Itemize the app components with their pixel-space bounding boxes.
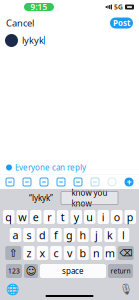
staticText: 123 — [8, 267, 20, 275]
staticText: r — [47, 210, 51, 224]
button[interactable]: n — [91, 246, 102, 260]
staticText: z — [26, 246, 31, 260]
button[interactable]: b — [77, 246, 89, 260]
staticText: x — [39, 246, 45, 260]
button[interactable]: Switch keyboard — [4, 281, 22, 297]
staticText: know you know — [71, 187, 107, 209]
staticText: t — [61, 210, 65, 224]
button[interactable]: know you know — [61, 191, 118, 204]
staticText: c — [53, 246, 58, 260]
staticText: a — [12, 228, 18, 242]
button[interactable]: u — [84, 210, 95, 224]
staticText: 🎙 — [119, 283, 133, 295]
button[interactable]: Character count — [103, 175, 120, 189]
staticText: ☺ — [25, 265, 36, 277]
staticText: g — [66, 228, 73, 242]
button[interactable]: “lykyk” — [21, 192, 61, 204]
staticText: ⇧ — [9, 247, 18, 259]
button[interactable]: q — [3, 210, 14, 224]
staticText: b — [79, 246, 86, 260]
button[interactable]: GIF — [18, 175, 35, 189]
staticText: k — [107, 228, 113, 242]
button[interactable]: Emoji — [24, 264, 38, 278]
staticText: 🌐 — [6, 283, 19, 295]
button[interactable]: Location — [86, 175, 103, 189]
button[interactable]: l — [118, 228, 129, 242]
button[interactable]: s — [23, 228, 35, 242]
button[interactable]: o — [111, 210, 122, 224]
button[interactable]: i — [97, 210, 109, 224]
staticText: q — [5, 210, 12, 224]
button[interactable]: c — [50, 246, 62, 260]
button[interactable]: h — [77, 228, 89, 242]
button[interactable]: 123 — [6, 264, 22, 278]
staticText: v — [67, 246, 72, 260]
button[interactable]: Dictation — [117, 281, 135, 297]
staticText: e — [33, 210, 39, 224]
button[interactable]: Cancel — [0, 13, 40, 33]
button[interactable]: p — [124, 210, 136, 224]
button[interactable]: Poll — [35, 175, 52, 189]
staticText: n — [93, 246, 100, 260]
staticText: space — [62, 266, 84, 276]
button[interactable]: f — [50, 228, 62, 242]
button[interactable]: Shift — [5, 246, 21, 260]
button[interactable]: v — [64, 246, 75, 260]
staticText: ⌫ — [119, 248, 132, 258]
staticText: f — [54, 228, 58, 242]
button[interactable]: j — [91, 228, 102, 242]
staticText: Post — [113, 18, 130, 28]
button[interactable]: a — [10, 228, 21, 242]
staticText: i — [102, 210, 105, 224]
button[interactable]: w — [16, 210, 28, 224]
button[interactable]: z — [23, 246, 35, 260]
button[interactable]: Post — [110, 17, 133, 28]
staticText: p — [127, 210, 134, 224]
button[interactable]: t — [57, 210, 68, 224]
staticText: o — [114, 210, 120, 224]
button[interactable]: r — [43, 210, 55, 224]
staticText: d — [39, 228, 46, 242]
staticText: 9:15 — [30, 2, 47, 12]
button[interactable]: g — [64, 228, 75, 242]
staticText: s — [26, 228, 31, 242]
button[interactable]: m — [104, 246, 116, 260]
staticText: w — [18, 210, 26, 224]
button[interactable]: Add post — [120, 175, 137, 189]
staticText: “lykyk” — [29, 193, 53, 203]
staticText: h — [79, 228, 86, 242]
staticText: Everyone can reply — [15, 162, 86, 173]
button[interactable]: d — [37, 228, 48, 242]
button[interactable]: Media — [1, 175, 18, 189]
staticText: m — [105, 246, 115, 260]
button[interactable]: return — [108, 264, 133, 278]
button[interactable]: y — [70, 210, 82, 224]
button[interactable]: e — [30, 210, 41, 224]
staticText: return — [110, 267, 130, 275]
staticText: l — [122, 228, 125, 242]
button[interactable]: space — [40, 264, 106, 278]
button[interactable]: Delete — [118, 246, 134, 260]
staticText: 5G — [114, 3, 123, 11]
staticText: j — [95, 228, 98, 242]
button[interactable]: List — [69, 175, 86, 189]
button[interactable]: Everyone can reply — [0, 160, 139, 174]
staticText: Cancel — [6, 17, 34, 29]
staticText: y — [74, 210, 79, 224]
staticText: lykyk — [22, 34, 44, 46]
button[interactable]: k — [104, 228, 116, 242]
staticText: u — [86, 210, 93, 224]
button[interactable]: Image description — [52, 175, 69, 189]
staticText: + — [126, 176, 131, 188]
button[interactable]: x — [37, 246, 48, 260]
